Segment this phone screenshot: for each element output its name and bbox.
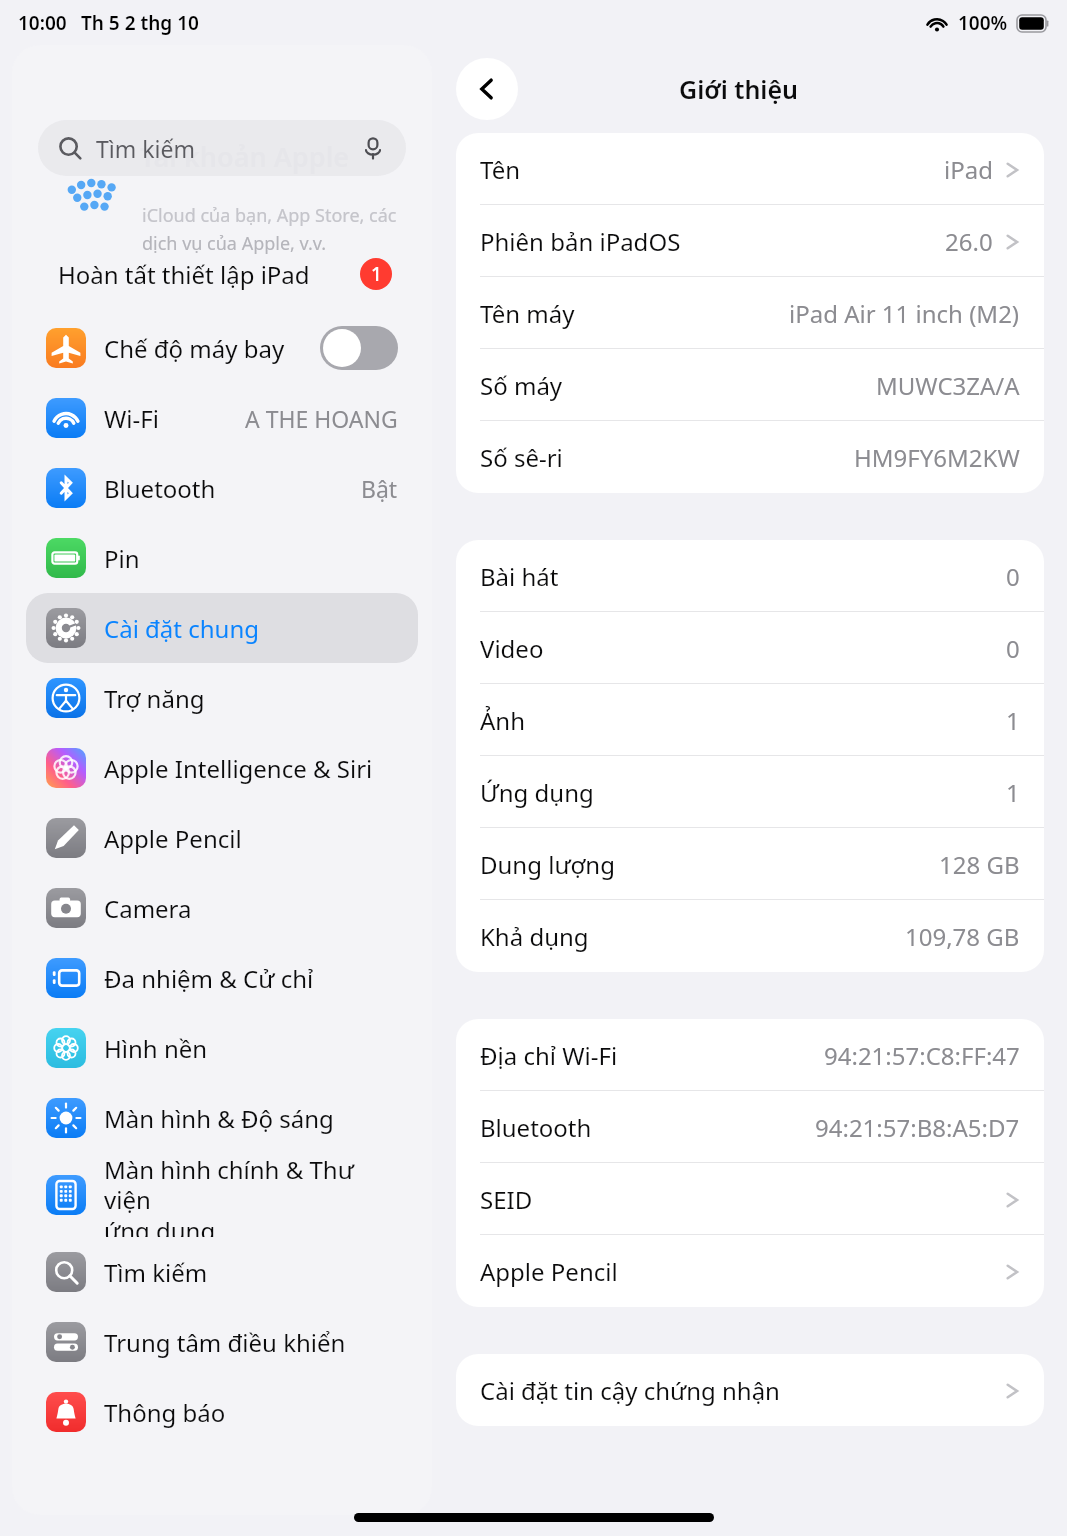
button[interactable]: Trung tâm điều khiển (26, 1307, 418, 1377)
button[interactable]: Camera (26, 873, 418, 943)
staticText: 1 (371, 261, 382, 287)
staticText: Bluetooth (104, 472, 216, 505)
staticText: 26.0 (945, 225, 993, 258)
button[interactable]: Bluetooth (456, 1091, 1044, 1163)
button[interactable]: Dung lượng (456, 828, 1044, 900)
staticText: Ứng dụng (480, 776, 594, 809)
button[interactable]: Cài đặt tin cậy chứng nhận (456, 1354, 1044, 1426)
staticText: Apple Intelligence & Siri (104, 752, 373, 785)
staticText: Tìm kiếm (96, 133, 195, 164)
button[interactable]: Wi-Fi (26, 383, 418, 453)
staticText: Chế độ máy bay (104, 332, 285, 365)
staticText: Bài hát (480, 560, 559, 593)
staticText: Phiên bản iPadOS (480, 225, 681, 258)
staticText: 128 GB (939, 848, 1020, 881)
staticText: Thông báo (104, 1396, 226, 1429)
staticText: Khả dụng (480, 920, 589, 953)
staticText: Bật (361, 473, 398, 504)
staticText: Apple Pencil (480, 1255, 618, 1288)
staticText: Tài khoản Apple (140, 138, 350, 175)
staticText: Pin (104, 542, 140, 575)
staticText: Hoàn tất thiết lập iPad (58, 258, 310, 291)
staticText: Cài đặt tin cậy chứng nhận (480, 1374, 780, 1407)
button[interactable]: Tên máy (456, 277, 1044, 349)
staticText: Camera (104, 892, 192, 925)
staticText: 94:21:57:B8:A5:D7 (815, 1111, 1020, 1144)
button[interactable]: Địa chỉ Wi-Fi (456, 1019, 1044, 1091)
button[interactable]: Phiên bản iPadOS (456, 205, 1044, 277)
staticText: Trung tâm điều khiển (104, 1326, 346, 1359)
staticText: Số máy (480, 369, 563, 402)
staticText: Màn hình chính & Thư viện ứng dụng (104, 1153, 398, 1237)
button[interactable]: Bluetooth (26, 453, 418, 523)
button[interactable]: Màn hình chính & Thư viện ứng dụng (26, 1153, 418, 1237)
staticText: Bluetooth (480, 1111, 592, 1144)
staticText: A THE HOANG (245, 403, 398, 434)
button[interactable]: Màn hình & Độ sáng (26, 1083, 418, 1153)
button[interactable]: Ứng dụng (456, 756, 1044, 828)
button[interactable]: Hình nền (26, 1013, 418, 1083)
button[interactable]: Tên (456, 133, 1044, 205)
button[interactable]: Chế độ máy bay (26, 313, 418, 383)
staticText: iCloud của bạn, App Store, các (142, 203, 397, 228)
staticText: 10:00 (18, 10, 67, 36)
staticText: MUWC3ZA/A (876, 369, 1020, 402)
button[interactable]: Chế độ máy bay (320, 326, 398, 370)
staticText: Tên (480, 153, 521, 186)
staticText: Tên máy (480, 297, 575, 330)
button[interactable]: Số sê-ri (456, 421, 1044, 493)
staticText: Dung lượng (480, 848, 615, 881)
staticText: Hình nền (104, 1032, 208, 1065)
button[interactable]: Apple Pencil (456, 1235, 1044, 1307)
staticText: 1 (1006, 704, 1020, 737)
staticText: dịch vụ của Apple, v.v. (142, 231, 327, 256)
staticText: Đa nhiệm & Cử chỉ (104, 962, 314, 995)
staticText: SEID (480, 1183, 533, 1216)
button[interactable]: Đa nhiệm & Cử chỉ (26, 943, 418, 1013)
staticText: Cài đặt chung (104, 612, 260, 645)
staticText: iPad Air 11 inch (M2) (789, 297, 1020, 330)
staticText: iPad (944, 153, 993, 186)
staticText: Số sê-ri (480, 441, 563, 474)
staticText: Th 5 2 thg 10 (81, 10, 199, 36)
staticText: 94:21:57:C8:FF:47 (824, 1039, 1020, 1072)
button[interactable]: Hoàn tất thiết lập iPad (12, 241, 432, 307)
button[interactable]: Pin (26, 523, 418, 593)
staticText: Giới thiệu (679, 72, 798, 106)
staticText: 0 (1006, 560, 1020, 593)
button[interactable]: Tìm kiếm (38, 120, 406, 176)
button[interactable]: Apple Intelligence & Siri (26, 733, 418, 803)
staticText: Apple Pencil (104, 822, 242, 855)
button[interactable]: Ảnh (456, 684, 1044, 756)
staticText: Trợ năng (104, 682, 205, 715)
button[interactable]: SEID (456, 1163, 1044, 1235)
staticText: Địa chỉ Wi-Fi (480, 1039, 618, 1072)
button[interactable]: Apple Pencil (26, 803, 418, 873)
button[interactable]: Video (456, 612, 1044, 684)
staticText: 100% (958, 10, 1008, 36)
staticText: Tìm kiếm (104, 1256, 208, 1289)
button[interactable]: Thông báo (26, 1377, 418, 1447)
button[interactable]: Tìm kiếm (26, 1237, 418, 1307)
staticText: Wi-Fi (104, 402, 159, 435)
button[interactable]: Số máy (456, 349, 1044, 421)
button[interactable]: Khả dụng (456, 900, 1044, 972)
staticText: Màn hình & Độ sáng (104, 1102, 334, 1135)
staticText: 0 (1006, 632, 1020, 665)
staticText: 109,78 GB (905, 920, 1020, 953)
button[interactable]: Bài hát (456, 540, 1044, 612)
staticText: 1 (1006, 776, 1020, 809)
button[interactable]: Quay lại (456, 58, 518, 120)
staticText: HM9FY6M2KW (854, 441, 1020, 474)
button[interactable]: Cài đặt chung (26, 593, 418, 663)
staticText: Ảnh (480, 704, 525, 737)
button[interactable]: Trợ năng (26, 663, 418, 733)
staticText: Video (480, 632, 544, 665)
